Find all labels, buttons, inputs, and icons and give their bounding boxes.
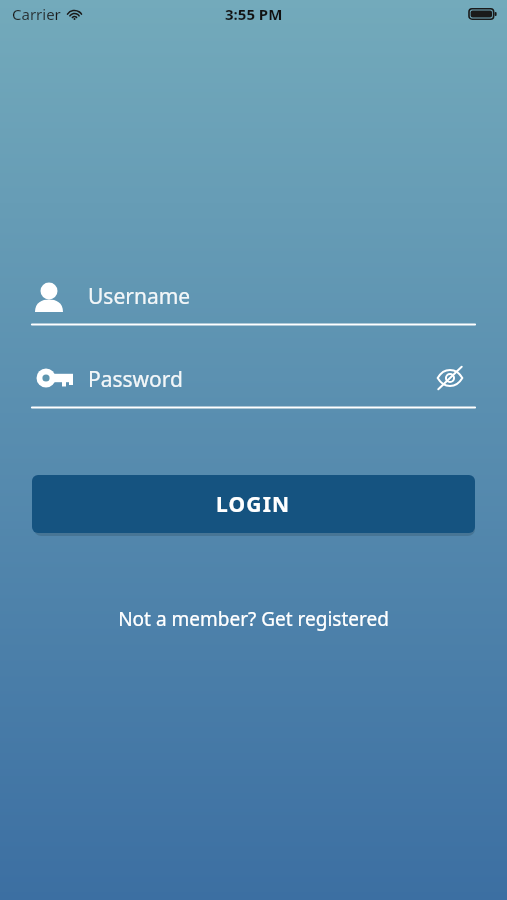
staticText: LOGIN [216, 490, 291, 519]
button[interactable]: Password [32, 359, 475, 409]
staticText: Password [88, 365, 183, 394]
button[interactable]: Username [32, 276, 475, 326]
button[interactable]: Not a member? Get registered [0, 600, 507, 638]
button[interactable]: Show password [432, 360, 468, 396]
staticText: Not a member? Get registered [118, 606, 389, 632]
staticText: 3:55 PM [225, 4, 283, 24]
button[interactable]: LOGIN [32, 475, 475, 533]
staticText: Carrier [12, 4, 61, 24]
staticText: Username [88, 282, 191, 311]
